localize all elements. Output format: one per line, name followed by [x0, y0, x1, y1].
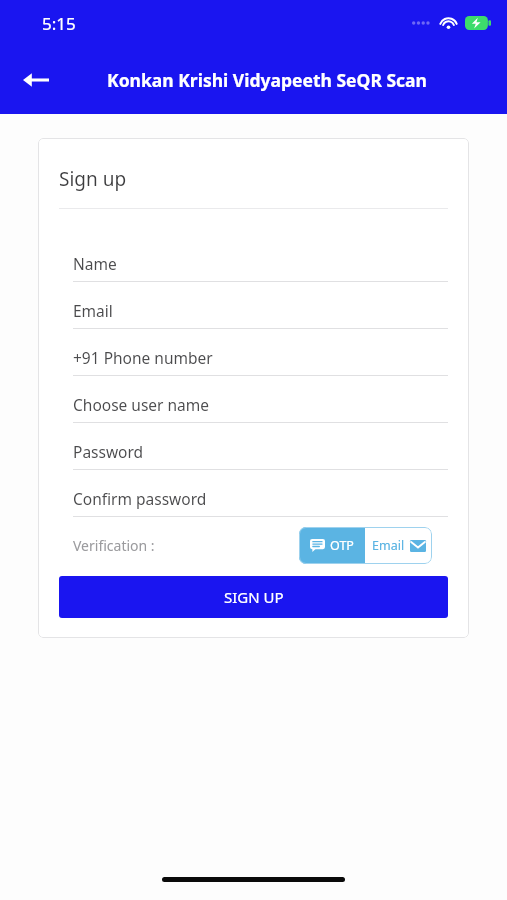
button[interactable]: OTP	[299, 527, 365, 564]
button[interactable]: +91 Phone number	[73, 329, 448, 376]
button[interactable]: Name	[73, 235, 448, 282]
staticText: +91 Phone number	[73, 347, 213, 368]
staticText: 5:15	[42, 12, 76, 35]
staticText: OTP	[330, 537, 354, 554]
staticText: Konkan Krishi Vidyapeeth SeQR Scan	[107, 68, 427, 92]
button[interactable]: SIGN UP	[59, 576, 448, 618]
button[interactable]: Confirm password	[73, 470, 448, 517]
button[interactable]: Email	[365, 527, 432, 564]
button[interactable]: Email	[73, 282, 448, 329]
button[interactable]: Password	[73, 423, 448, 470]
button[interactable]: Choose user name	[73, 376, 448, 423]
staticText: Password	[73, 441, 144, 462]
staticText: Email	[372, 537, 405, 554]
staticText: Verification :	[73, 536, 155, 555]
staticText: Sign up	[59, 166, 127, 192]
button[interactable]: Back	[14, 58, 58, 102]
staticText: Choose user name	[73, 394, 210, 415]
staticText: Confirm password	[73, 488, 207, 509]
staticText: SIGN UP	[224, 587, 284, 607]
staticText: Email	[73, 300, 113, 321]
staticText: Name	[73, 253, 117, 274]
